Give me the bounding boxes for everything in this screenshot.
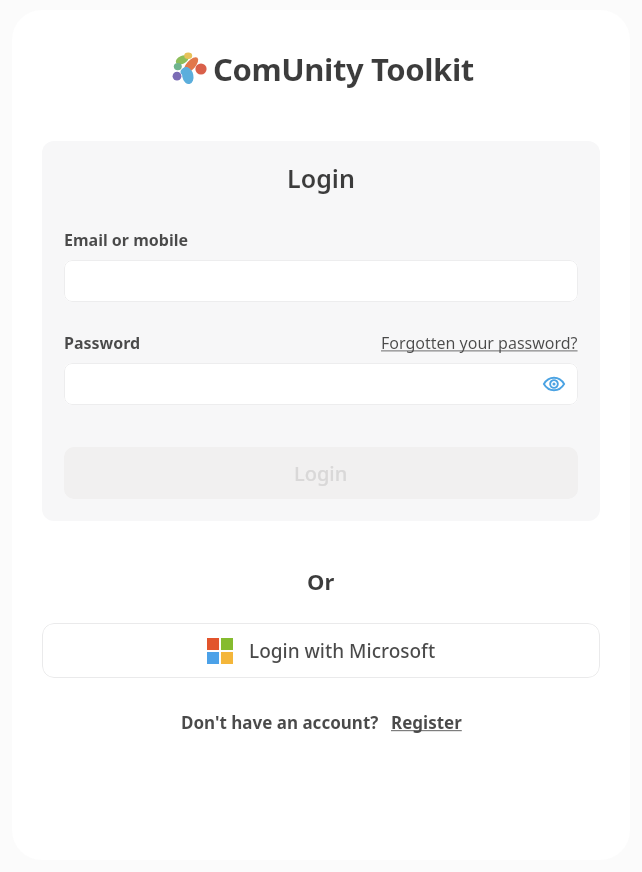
staticText: Email or mobile [64,229,188,251]
staticText: Login with Microsoft [249,638,436,664]
button[interactable]: Forgotten your password? [381,332,578,354]
staticText: Login [64,161,578,195]
staticText: Don't have an account? [181,711,379,734]
button[interactable]: Login with Microsoft [42,623,600,678]
button[interactable] [64,260,578,302]
staticText: Forgotten your password? [381,332,578,354]
staticText: Login [294,460,348,487]
button[interactable]: Register [391,711,462,734]
button[interactable]: Show password [540,370,568,398]
button[interactable]: Show password [64,363,578,405]
staticText: Register [391,711,462,734]
staticText: ComUnity Toolkit [213,48,474,90]
staticText: Or [307,566,335,596]
staticText: Password [64,332,141,354]
